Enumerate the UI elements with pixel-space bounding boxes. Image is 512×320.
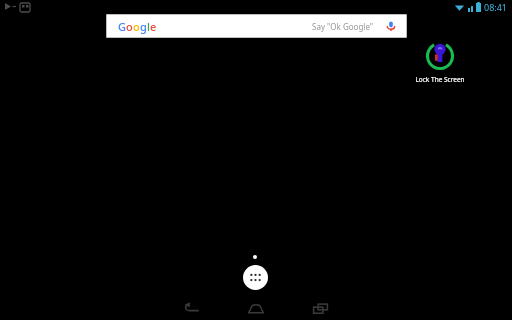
staticText: g [140,19,147,34]
staticText: e [150,19,157,34]
button[interactable]: Lock The Screen [410,40,470,84]
button[interactable]: G [107,15,406,37]
staticText: Say "Ok Google" [312,21,374,32]
staticText: l [147,19,150,34]
staticText: o [133,19,140,34]
button[interactable]: Recent apps [301,296,339,320]
button[interactable]: Back [172,296,210,320]
button[interactable]: Apps [243,265,268,290]
staticText: 08:41 [484,1,508,13]
staticText: o [126,19,133,34]
button[interactable]: Voice search [384,19,398,33]
button[interactable]: Home [237,296,275,320]
staticText: G [118,19,126,34]
staticText: Lock The Screen [410,75,470,84]
